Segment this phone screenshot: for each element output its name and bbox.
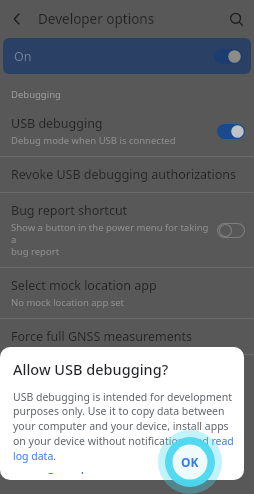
- button[interactable]: Search: [218, 1, 254, 37]
- button[interactable]: Revoke USB debugging authorizations: [0, 157, 254, 192]
- staticText: attach before executing: [11, 383, 117, 396]
- button[interactable]: Enable view attribute inspection: [0, 355, 254, 405]
- staticText: USB debugging: [11, 115, 103, 132]
- staticText: USB debugging is intended for developmen…: [13, 390, 234, 463]
- staticText: Cancel: [46, 469, 85, 474]
- staticText: Force full GNSS measurements: [11, 328, 192, 345]
- staticText: No mock location app set: [11, 296, 125, 309]
- button[interactable]: Force full GNSS measurements: [0, 319, 254, 354]
- button[interactable]: Bug report shortcut: [0, 193, 254, 267]
- staticText: Bug report shortcut: [11, 202, 128, 219]
- staticText: OK: [181, 454, 199, 470]
- button[interactable]: USB debugging: [0, 106, 254, 156]
- staticText: Revoke USB debugging authorizations: [11, 166, 237, 183]
- button[interactable]: Back: [0, 2, 34, 36]
- staticText: Developer options: [38, 10, 218, 28]
- staticText: Select mock location app: [11, 277, 157, 294]
- staticText: Debugging: [11, 88, 61, 101]
- button[interactable]: On: [3, 38, 251, 74]
- staticText: Allow USB debugging?: [13, 359, 169, 379]
- button[interactable]: Select mock location app: [0, 268, 254, 318]
- button[interactable]: OK: [163, 463, 200, 480]
- staticText: OK: [173, 469, 190, 474]
- staticText: Debug mode when USB is connected: [11, 134, 176, 147]
- staticText: Enable view attribute inspection: [11, 364, 199, 381]
- staticText: On: [14, 48, 32, 65]
- staticText: Show a button in the power menu for taki…: [11, 221, 211, 258]
- button[interactable]: Cancel: [36, 463, 95, 480]
